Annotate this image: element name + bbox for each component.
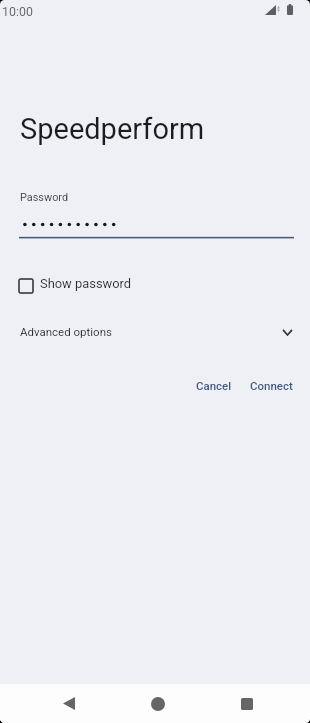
button[interactable]: Recent apps (225, 684, 269, 723)
staticText: Connect (250, 379, 293, 392)
button[interactable]: Cancel (191, 373, 237, 397)
staticText: 10:00 (2, 4, 33, 19)
button[interactable]: Home (136, 684, 180, 723)
staticText: Password (20, 191, 69, 204)
button[interactable]: Show password (12, 271, 147, 298)
button[interactable]: Connect (246, 373, 296, 397)
button[interactable]: Advanced options (12, 320, 298, 346)
staticText: Speedperform (20, 112, 205, 146)
staticText: Cancel (196, 379, 232, 392)
button[interactable]: Back (47, 684, 91, 723)
staticText: Advanced options (20, 325, 112, 338)
staticText: Show password (40, 276, 132, 291)
